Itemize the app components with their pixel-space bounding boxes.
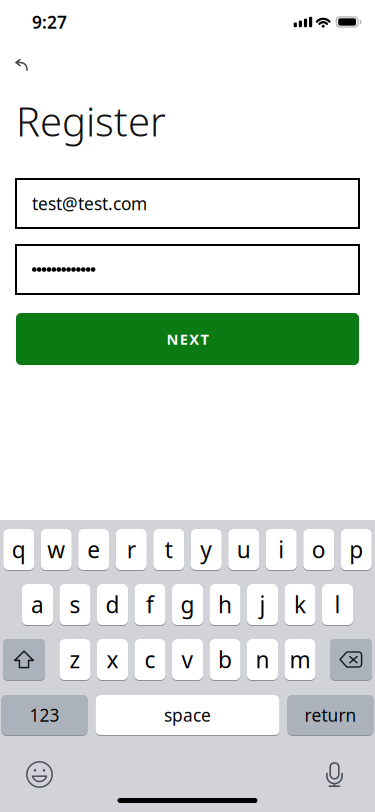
button[interactable]: Shift xyxy=(3,639,45,681)
button[interactable]: m xyxy=(284,639,315,681)
button[interactable]: u xyxy=(228,529,259,571)
button[interactable]: return xyxy=(287,695,373,736)
staticText: return xyxy=(304,703,356,726)
staticText: o xyxy=(312,534,326,564)
button[interactable]: x xyxy=(97,639,128,681)
staticText: e xyxy=(87,534,100,564)
staticText: z xyxy=(69,644,80,674)
button[interactable]: g xyxy=(172,584,203,626)
button[interactable]: a xyxy=(22,584,53,626)
button[interactable]: p xyxy=(341,529,372,571)
staticText: space xyxy=(164,703,211,726)
button[interactable]: b xyxy=(209,639,240,681)
button[interactable]: e xyxy=(78,529,109,571)
button[interactable]: s xyxy=(59,584,90,626)
staticText: y xyxy=(200,534,212,564)
button[interactable]: l xyxy=(322,584,353,626)
staticText: a xyxy=(31,589,44,619)
button[interactable]: k xyxy=(284,584,315,626)
staticText: r xyxy=(127,534,136,564)
button[interactable]: n xyxy=(247,639,278,681)
button[interactable]: t xyxy=(153,529,184,571)
button[interactable]: y xyxy=(191,529,222,571)
button[interactable]: i xyxy=(266,529,297,571)
button[interactable]: 123 xyxy=(1,695,87,736)
staticText: m xyxy=(289,644,310,674)
staticText: 123 xyxy=(29,703,59,726)
staticText: v xyxy=(181,644,193,674)
staticText: test@test.com xyxy=(32,192,147,215)
staticText: s xyxy=(69,589,80,619)
staticText: d xyxy=(105,589,119,619)
staticText: n xyxy=(255,644,269,674)
button[interactable]: r xyxy=(116,529,147,571)
button[interactable]: space xyxy=(95,695,279,736)
staticText: f xyxy=(146,589,154,619)
button[interactable]: q xyxy=(3,529,34,571)
button[interactable]: h xyxy=(209,584,240,626)
button[interactable]: Emoji xyxy=(26,761,53,788)
staticText: t xyxy=(165,534,173,564)
staticText: 9:27 xyxy=(32,10,67,33)
button[interactable]: Back xyxy=(0,44,59,86)
staticText: w xyxy=(47,534,65,564)
staticText: x xyxy=(106,644,118,674)
staticText: u xyxy=(237,534,251,564)
staticText: Register xyxy=(16,94,166,147)
button[interactable]: j xyxy=(247,584,278,626)
button[interactable]: v xyxy=(172,639,203,681)
button[interactable]: w xyxy=(41,529,72,571)
staticText: k xyxy=(294,589,306,619)
button[interactable]: Dictation xyxy=(326,762,343,787)
button[interactable]: z xyxy=(59,639,90,681)
staticText: c xyxy=(144,644,155,674)
staticText: h xyxy=(218,589,232,619)
staticText: l xyxy=(334,589,340,619)
staticText: NEXT xyxy=(167,329,208,349)
button[interactable]: c xyxy=(134,639,165,681)
button[interactable]: NEXT xyxy=(16,313,359,365)
staticText: b xyxy=(218,644,232,674)
button[interactable]: f xyxy=(134,584,165,626)
staticText: i xyxy=(278,534,284,564)
staticText: j xyxy=(259,589,265,619)
staticText: q xyxy=(12,534,26,564)
staticText: g xyxy=(180,589,194,619)
button[interactable]: o xyxy=(303,529,334,571)
button[interactable]: Delete xyxy=(330,639,372,681)
staticText: p xyxy=(349,534,363,564)
button[interactable]: d xyxy=(97,584,128,626)
